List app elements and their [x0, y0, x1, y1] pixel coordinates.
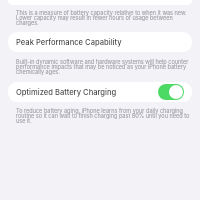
staticText: Optimized Battery Charging: [16, 88, 117, 97]
staticText: Peak Performance Capability: [16, 38, 122, 47]
staticText: To reduce battery aging, iPhone learns f…: [16, 108, 191, 124]
button[interactable]: Optimized Battery Charging toggle, on: [158, 84, 184, 100]
button[interactable]: Peak Performance Capability: [8, 32, 192, 52]
staticText: Built-in dynamic software and hardware s…: [16, 59, 191, 75]
button[interactable]: Optimized Battery Charging: [8, 82, 192, 102]
staticText: This is a measure of battery capacity re…: [16, 10, 191, 26]
